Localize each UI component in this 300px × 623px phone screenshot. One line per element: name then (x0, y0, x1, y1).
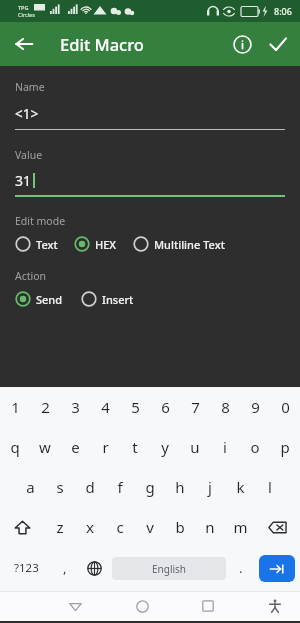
button[interactable]: 1 (0, 387, 30, 427)
staticText: HEX (95, 237, 117, 252)
staticText: . (239, 559, 243, 577)
staticText: s (56, 477, 64, 497)
button[interactable]: HEX (74, 234, 117, 254)
button[interactable]: Insert (81, 289, 134, 309)
button[interactable]: Change language (78, 547, 110, 589)
button[interactable]: m (225, 507, 255, 547)
staticText: r (102, 437, 109, 457)
staticText: ?123 (14, 560, 39, 576)
staticText: Circles (18, 11, 35, 18)
button[interactable]: w (30, 427, 60, 467)
staticText: 7 (191, 397, 200, 417)
button[interactable]: a (15, 467, 45, 507)
staticText: 0 (281, 397, 290, 417)
staticText: c (116, 517, 124, 537)
button[interactable]: 6 (150, 387, 180, 427)
staticText: e (71, 437, 80, 457)
staticText: z (56, 517, 64, 537)
button[interactable]: 2 (30, 387, 60, 427)
staticText: a (26, 477, 35, 497)
staticText: English (152, 562, 187, 576)
staticText: 31 (15, 171, 32, 190)
staticText: Edit mode (15, 214, 66, 228)
staticText: j (208, 477, 212, 497)
staticText: 1 (11, 397, 20, 417)
staticText: p (280, 437, 290, 457)
button[interactable]: x (75, 507, 105, 547)
button[interactable]: d (75, 467, 105, 507)
button[interactable]: y (150, 427, 180, 467)
button[interactable]: 4 (90, 387, 120, 427)
staticText: g (145, 477, 155, 497)
button[interactable]: ?123 (0, 547, 52, 589)
button[interactable]: Home (127, 591, 157, 621)
staticText: Multiline Text (154, 237, 225, 252)
button[interactable]: . (228, 547, 254, 589)
button[interactable]: 7 (180, 387, 210, 427)
button[interactable]: t (120, 427, 150, 467)
button[interactable]: Back (60, 591, 90, 621)
button[interactable]: Enter (259, 555, 295, 582)
button[interactable]: Send (15, 289, 63, 309)
button[interactable]: u (180, 427, 210, 467)
button[interactable]: Accessibility (260, 591, 290, 621)
button[interactable]: Shift (0, 507, 45, 547)
button[interactable]: 5 (120, 387, 150, 427)
button[interactable]: i (210, 427, 240, 467)
button[interactable]: Save (260, 26, 296, 62)
staticText: i (223, 437, 227, 457)
button[interactable]: 9 (240, 387, 270, 427)
button[interactable]: h (165, 467, 195, 507)
staticText: v (146, 517, 154, 537)
button[interactable]: c (105, 507, 135, 547)
staticText: h (175, 477, 185, 497)
staticText: Text (36, 237, 58, 252)
staticText: 4 (101, 397, 110, 417)
button[interactable]: Backspace (255, 507, 300, 547)
button[interactable]: b (165, 507, 195, 547)
staticText: 5 (131, 397, 140, 417)
staticText: 3 (71, 397, 80, 417)
button[interactable]: g (135, 467, 165, 507)
staticText: t (132, 437, 138, 457)
button[interactable]: Multiline Text (133, 234, 225, 254)
staticText: Edit Macro (60, 33, 144, 55)
button[interactable]: z (45, 507, 75, 547)
staticText: q (10, 437, 20, 457)
button[interactable]: , (52, 547, 78, 589)
staticText: Send (36, 292, 63, 307)
staticText: b (175, 517, 185, 537)
staticText: l (268, 477, 272, 497)
staticText: Action (15, 269, 47, 283)
button[interactable]: n (195, 507, 225, 547)
button[interactable]: Back (6, 26, 42, 62)
button[interactable]: 0 (270, 387, 300, 427)
button[interactable]: q (0, 427, 30, 467)
staticText: , (63, 559, 67, 577)
button[interactable]: English (112, 557, 226, 580)
staticText: Value (15, 148, 43, 162)
staticText: 8 (221, 397, 230, 417)
button[interactable]: o (240, 427, 270, 467)
staticText: <1> (15, 105, 39, 123)
staticText: 6 (161, 397, 170, 417)
staticText: f (117, 477, 123, 497)
button[interactable]: Text (15, 234, 58, 254)
button[interactable]: f (105, 467, 135, 507)
button[interactable]: 8 (210, 387, 240, 427)
staticText: TPG (18, 4, 29, 11)
button[interactable]: j (195, 467, 225, 507)
button[interactable]: e (60, 427, 90, 467)
button[interactable]: s (45, 467, 75, 507)
button[interactable]: r (90, 427, 120, 467)
button[interactable]: 3 (60, 387, 90, 427)
button[interactable]: Info (224, 26, 260, 62)
button[interactable]: v (135, 507, 165, 547)
staticText: o (250, 437, 260, 457)
staticText: 2 (41, 397, 50, 417)
button[interactable]: k (225, 467, 255, 507)
button[interactable]: Recents (193, 591, 223, 621)
button[interactable]: p (270, 427, 300, 467)
staticText: n (205, 517, 215, 537)
button[interactable]: l (255, 467, 285, 507)
